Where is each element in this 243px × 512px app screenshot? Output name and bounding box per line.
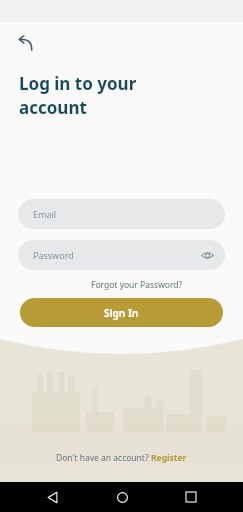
staticText: Forgot your Password? (91, 279, 183, 291)
button[interactable]: Forgot your Password? (87, 277, 187, 293)
button[interactable]: Home (105, 482, 139, 512)
button[interactable]: Back (35, 482, 69, 512)
button[interactable]: Password (18, 240, 225, 270)
button[interactable]: Show password (197, 245, 217, 265)
button[interactable]: Email (18, 199, 225, 229)
button[interactable]: Register (151, 452, 187, 464)
staticText: Register (151, 452, 187, 464)
button[interactable]: Sign In (20, 298, 223, 327)
button[interactable]: Recent apps (174, 482, 208, 512)
button[interactable]: Back (10, 28, 42, 60)
staticText: Sign In (104, 306, 139, 320)
staticText: Password (33, 249, 74, 261)
staticText: Don't have an account? (56, 452, 151, 464)
staticText: Email (33, 208, 57, 220)
staticText: Log in to your account (19, 72, 137, 119)
